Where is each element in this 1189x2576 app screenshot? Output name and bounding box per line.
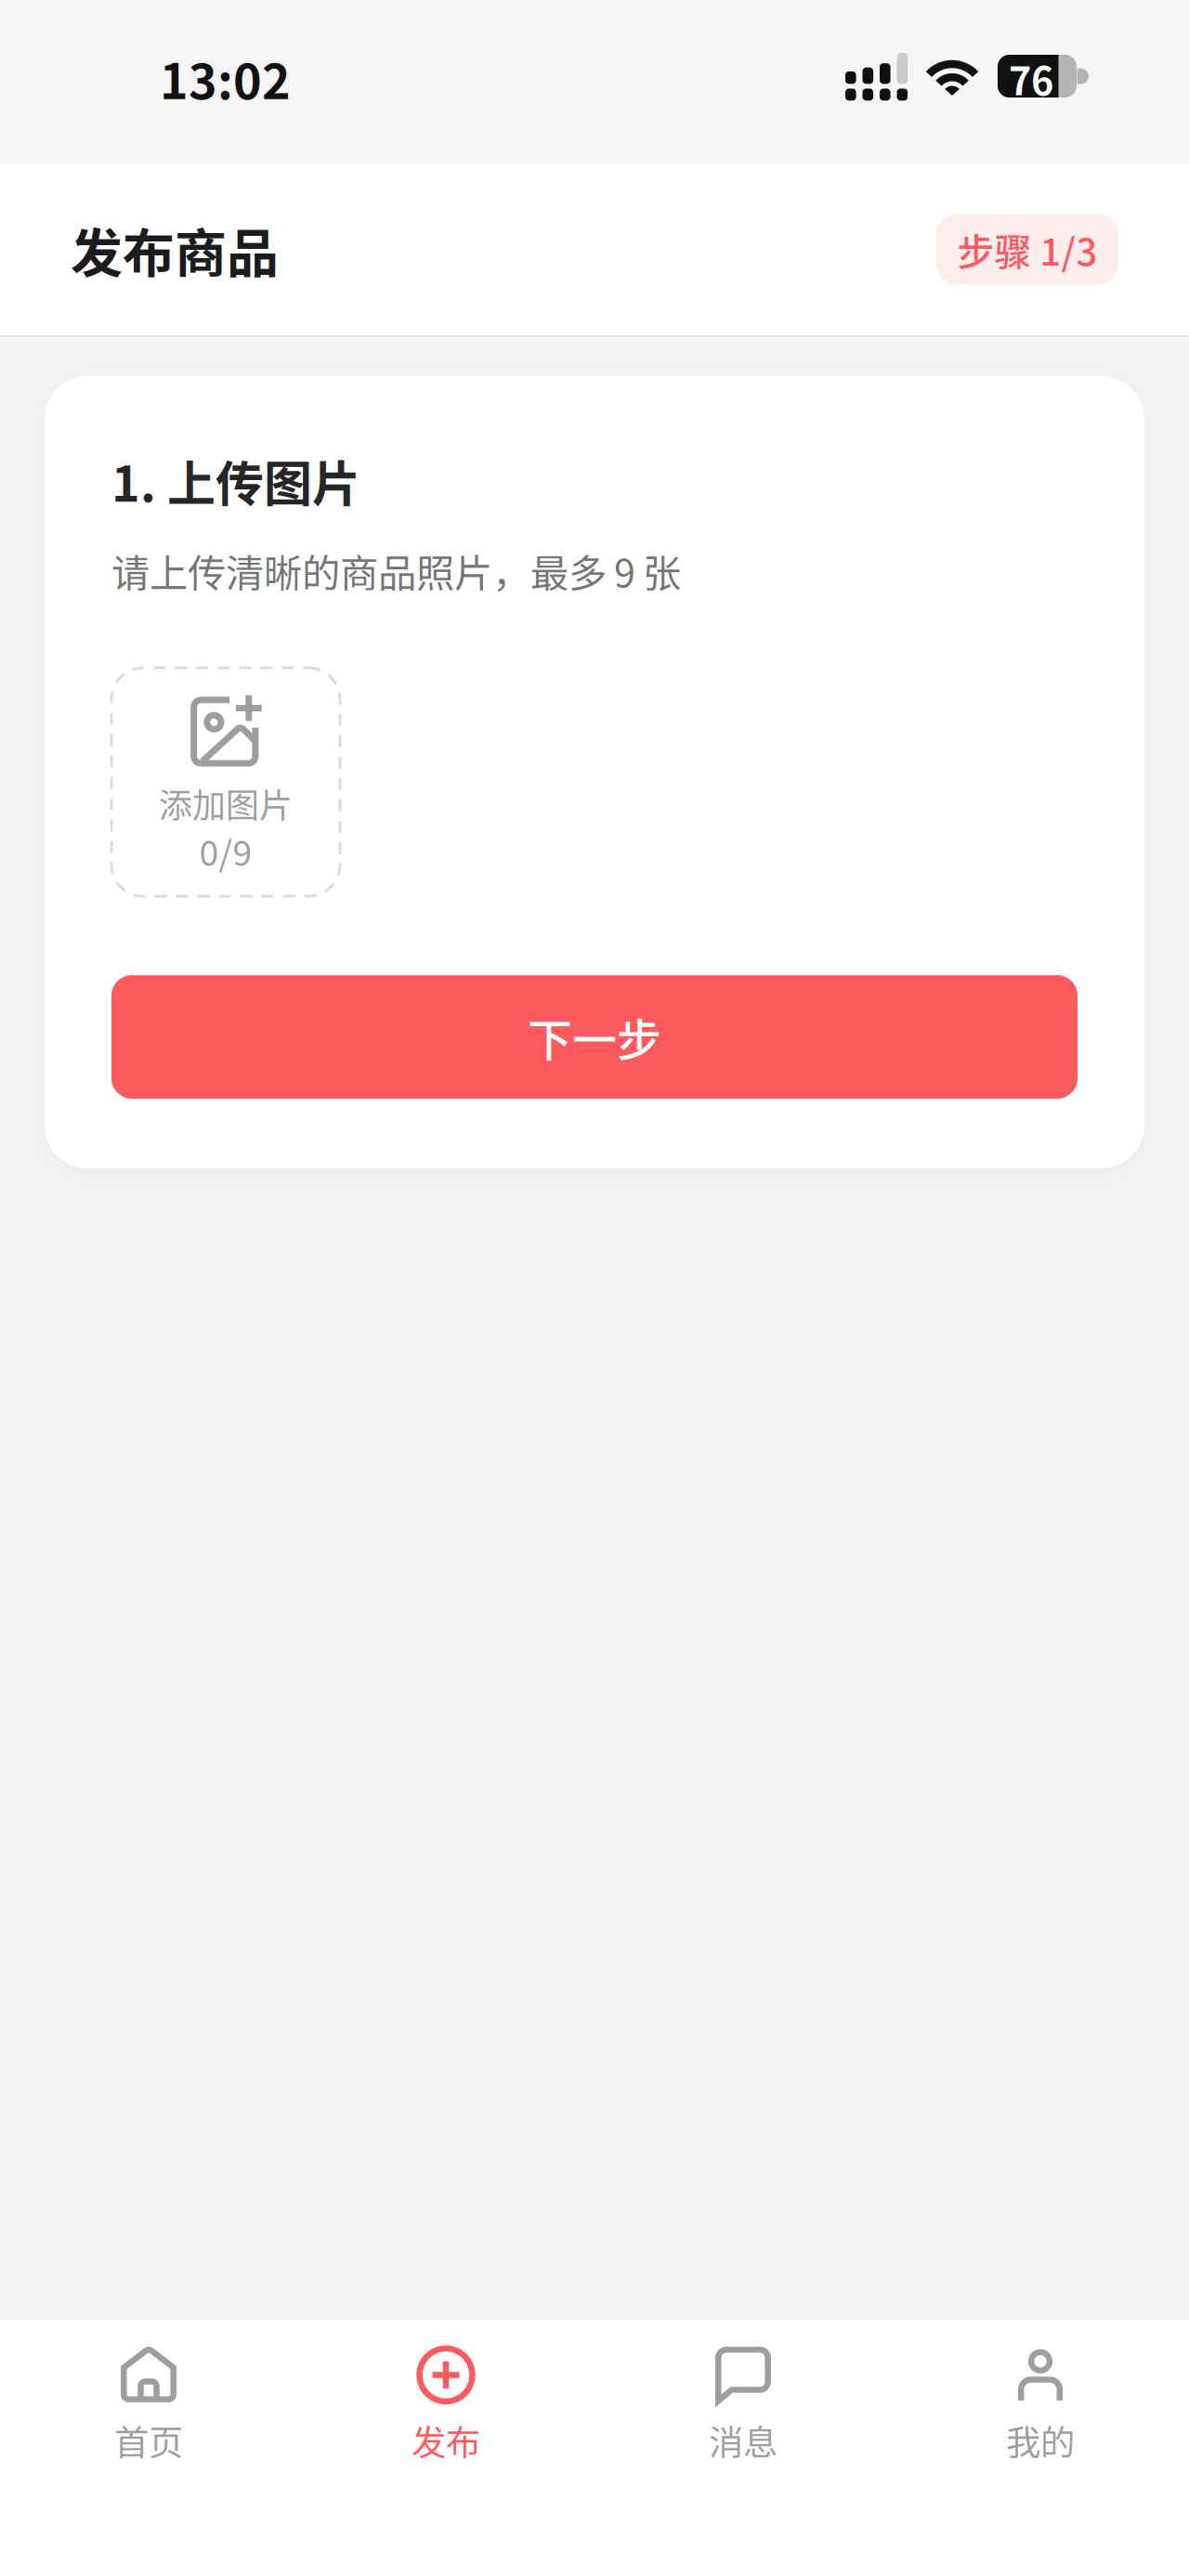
staticText: 首页 [114,2415,183,2466]
staticText: 1. 上传图片 [111,446,360,516]
staticText: 13:02 [160,43,291,113]
staticText: 消息 [709,2415,777,2466]
staticText: 76 [1009,51,1053,106]
staticText: 我的 [1006,2415,1075,2466]
button[interactable]: 我的 [892,2321,1189,2488]
button[interactable]: 下一步 [111,975,1078,1099]
staticText: 请上传清晰的商品照片，最多 9 张 [111,543,681,598]
staticText: 0/9 [199,826,252,876]
staticText: 下一步 [528,1005,661,1069]
button[interactable]: 发布 [297,2321,594,2488]
staticText: 发布商品 [71,212,279,287]
staticText: 步骤 1/3 [957,222,1098,276]
button[interactable]: 步骤 1/3 [936,214,1118,285]
staticText: 发布 [412,2415,480,2466]
staticText: 添加图片 [159,779,293,828]
button[interactable]: 添加图片 [111,668,340,896]
button[interactable]: 消息 [594,2321,892,2488]
button[interactable]: 首页 [0,2321,297,2488]
